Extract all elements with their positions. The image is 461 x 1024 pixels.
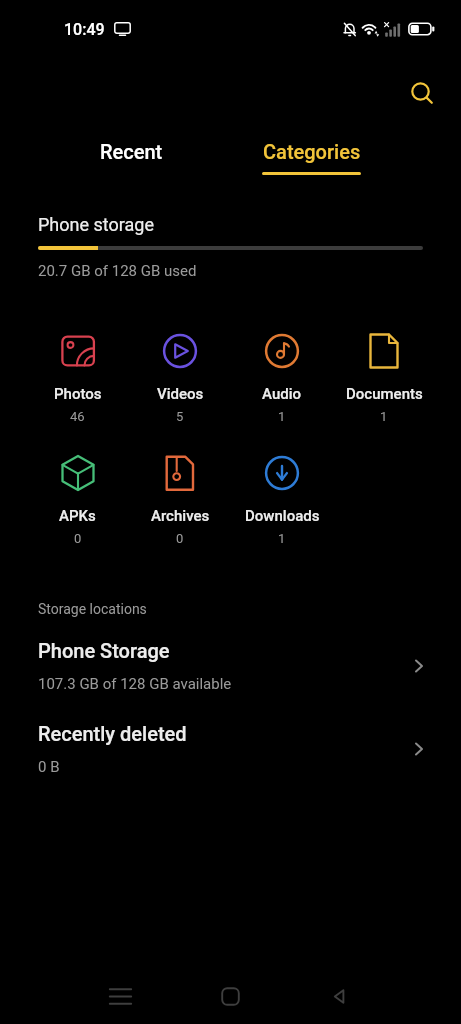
button[interactable]: Photos [26,332,129,424]
staticText: Categories [263,140,361,163]
staticText: 0 [74,531,82,546]
staticText: Documents [346,385,423,403]
button[interactable] [104,968,136,1024]
button[interactable]: Phone Storage [0,639,461,693]
staticText: APKs [59,507,96,525]
staticText: 5 [176,409,184,424]
button[interactable]: Archives [129,454,231,546]
staticText: 10:49 [64,20,105,39]
staticText: Storage locations [38,601,147,617]
staticText: 46 [70,409,85,424]
staticText: Audio [262,385,302,403]
staticText: 1 [278,409,286,424]
staticText: Videos [157,385,204,403]
staticText: Phone storage [38,214,154,235]
staticText: Recent [100,140,163,163]
staticText: 0 B [38,758,60,776]
button[interactable]: Downloads [231,454,333,546]
button[interactable]: APKs [26,454,129,546]
staticText: Photos [54,385,102,403]
button[interactable]: Recently deleted [0,722,461,776]
button[interactable]: Documents [333,332,435,424]
button[interactable] [403,74,443,114]
staticText: 107.3 GB of 128 GB available [38,675,232,693]
button[interactable]: Audio [231,332,333,424]
staticText: 1 [278,531,286,546]
button[interactable]: Recent [61,118,201,163]
staticText: 20.7 GB of 128 GB used [38,262,197,280]
staticText: Downloads [245,507,320,525]
staticText: Recently deleted [38,722,187,745]
staticText: 1 [380,409,388,424]
staticText: Archives [151,507,210,525]
button[interactable] [214,968,246,1024]
staticText: Phone Storage [38,639,170,662]
button[interactable]: Videos [129,332,231,424]
button[interactable] [323,968,355,1024]
button[interactable]: Categories [241,118,381,175]
staticText: 0 [176,531,184,546]
